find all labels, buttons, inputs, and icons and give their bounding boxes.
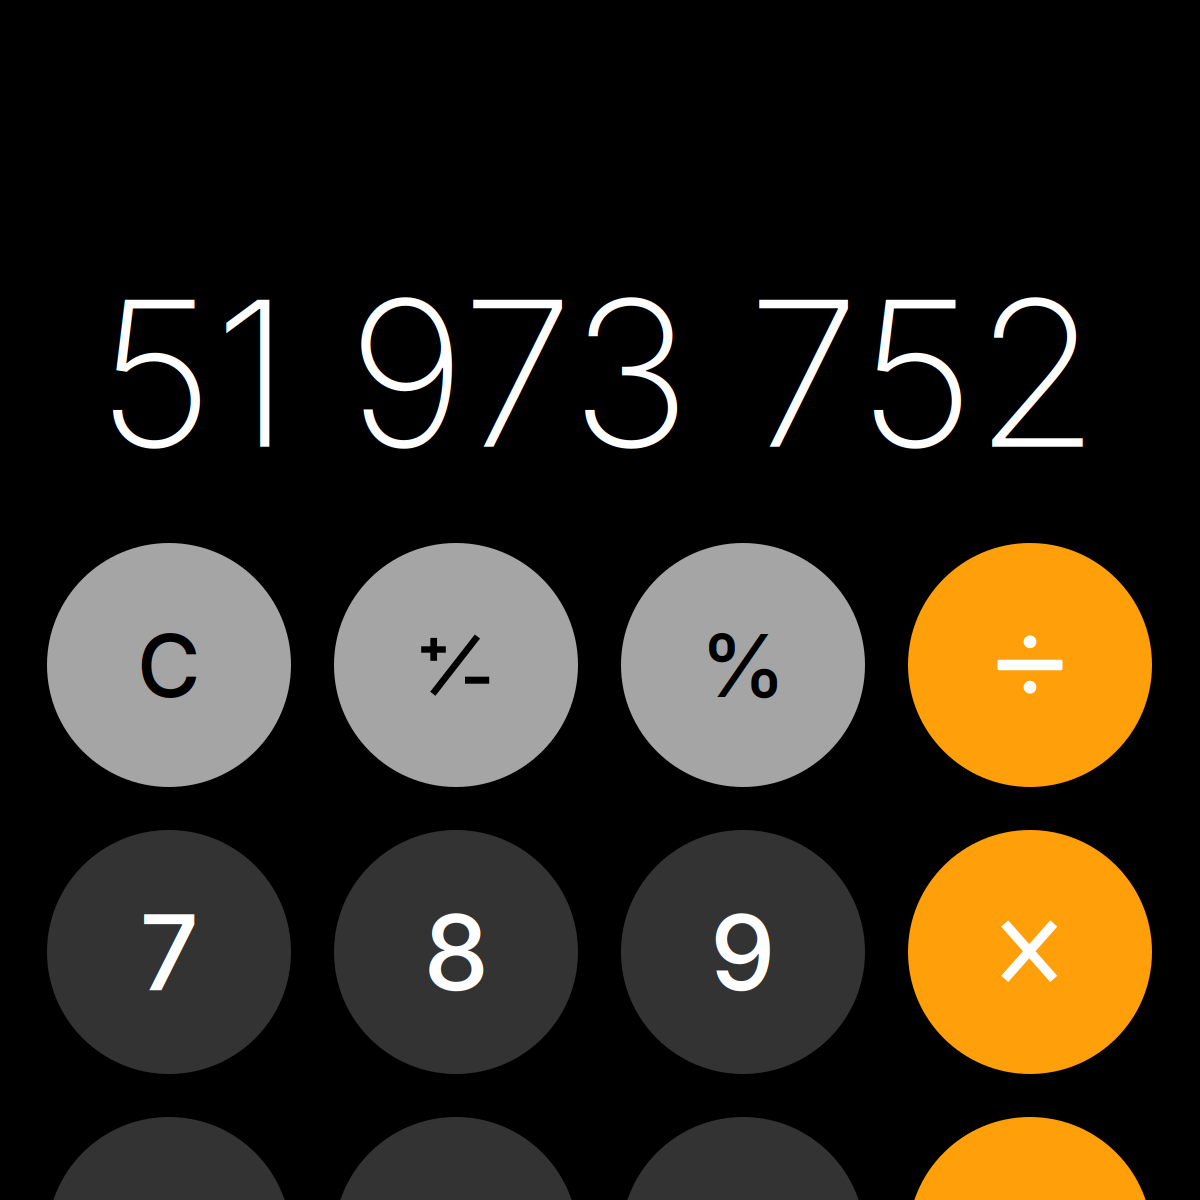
button[interactable]: % — [621, 543, 865, 787]
button[interactable]: 7 — [47, 830, 291, 1074]
button[interactable]: 5 — [334, 1117, 578, 1200]
button[interactable]: 9 — [621, 830, 865, 1074]
staticText: 9 — [710, 890, 776, 1015]
staticText: C — [137, 613, 201, 718]
staticText: 7 — [139, 890, 198, 1015]
staticText: % — [700, 613, 786, 718]
staticText: 8 — [423, 890, 488, 1015]
button[interactable]: C — [47, 543, 291, 787]
staticText: 51 973 752 — [96, 250, 1099, 496]
button[interactable]: Subtract — [908, 1117, 1152, 1200]
button[interactable]: Divide — [908, 543, 1152, 787]
button[interactable]: 6 — [621, 1117, 865, 1200]
button[interactable]: 8 — [334, 830, 578, 1074]
button[interactable]: 4 — [47, 1117, 291, 1200]
button[interactable]: Toggle sign — [334, 543, 578, 787]
button[interactable]: Multiply — [908, 830, 1152, 1074]
